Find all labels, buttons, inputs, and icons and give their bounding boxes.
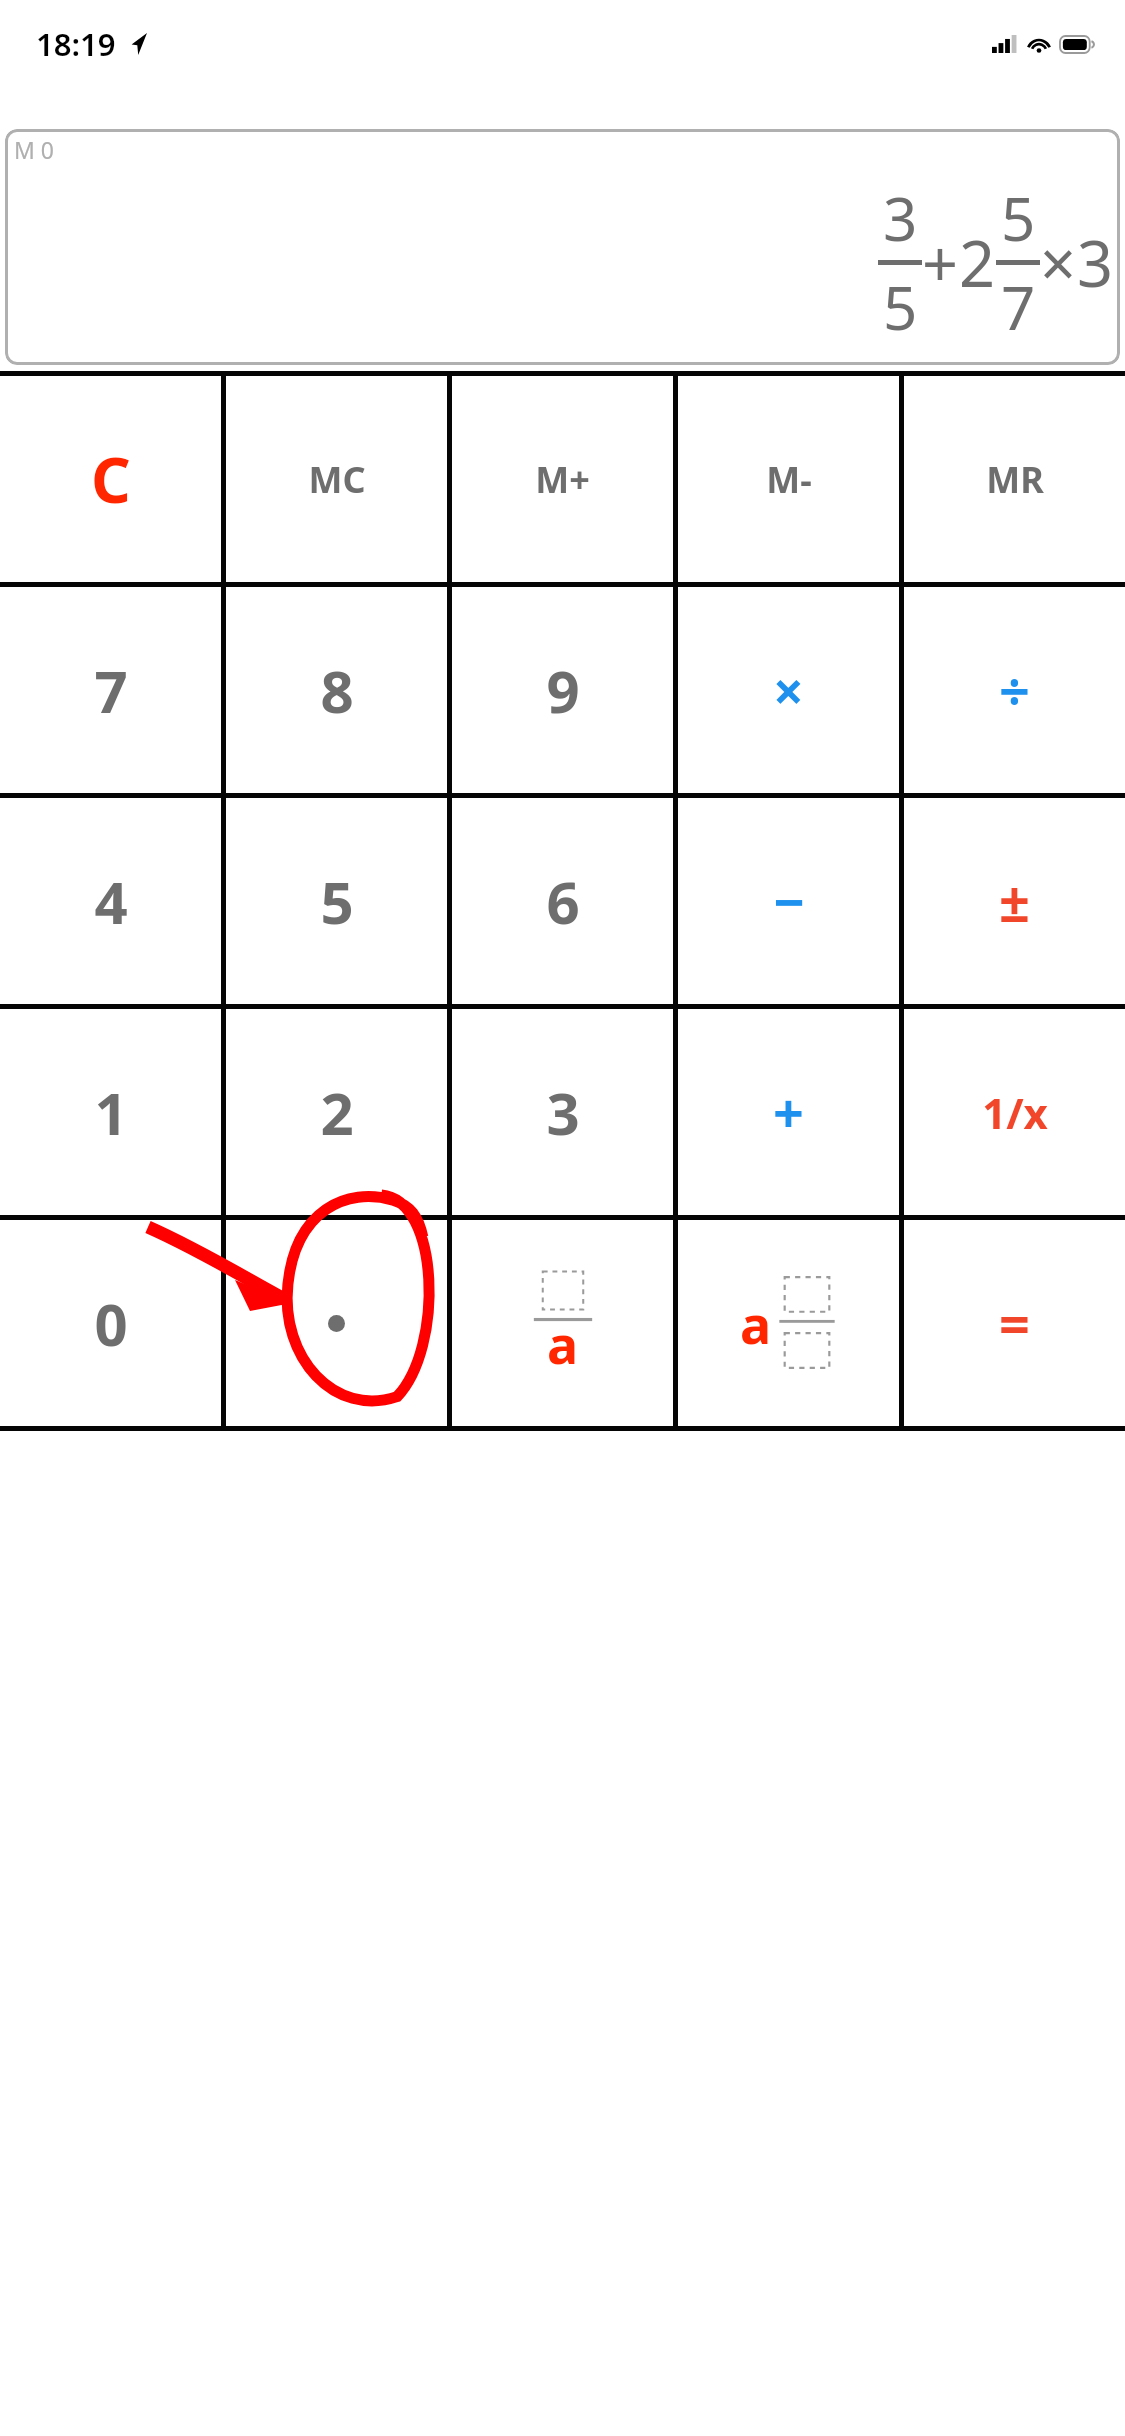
staticText: M+ [535,455,590,504]
button[interactable]: 1/x [904,1009,1125,1215]
staticText: = [999,1286,1030,1360]
button[interactable]: 0 [0,1220,221,1426]
button[interactable]: Fraction [452,1220,673,1426]
staticText: + [773,1075,804,1149]
button[interactable]: 5 [226,798,447,1004]
staticText: + [922,220,959,306]
staticText: 0 [94,1284,128,1363]
staticText: 6 [546,862,580,941]
staticText: 5 [320,862,354,941]
staticText: 8 [320,651,354,730]
button[interactable]: − [678,798,899,1004]
staticText: 4 [94,862,128,941]
staticText: 1 [94,1073,128,1152]
button[interactable]: 4 [0,798,221,1004]
button[interactable]: C [0,376,221,582]
button[interactable]: = [904,1220,1125,1426]
staticText: C [91,437,131,521]
staticText: 18:19 [36,23,116,65]
staticText: 3 [1077,220,1114,306]
button[interactable]: 2 [226,1009,447,1215]
button[interactable]: Mixed fraction [678,1220,899,1426]
button[interactable]: 7 [0,587,221,793]
staticText: ± [999,864,1030,938]
button[interactable]: ÷ [904,587,1125,793]
button[interactable]: M+ [452,376,673,582]
staticText: × [773,653,804,727]
button[interactable]: + [678,1009,899,1215]
staticText: MC [308,455,366,504]
button[interactable]: 3 [452,1009,673,1215]
staticText: 7 [1001,266,1036,348]
staticText: a [547,1308,579,1379]
staticText: a [740,1288,772,1359]
button[interactable]: 6 [452,798,673,1004]
staticText: × [1040,220,1077,306]
staticText: 2 [320,1073,354,1152]
staticText: 3 [883,177,918,259]
staticText: 5 [883,266,918,348]
staticText: M- [766,455,812,504]
staticText: 7 [94,651,128,730]
button[interactable]: 1 [0,1009,221,1215]
button[interactable]: ± [904,798,1125,1004]
staticText: 5 [1001,177,1036,259]
staticText: 2 [959,220,996,306]
staticText: − [773,864,805,938]
staticText: 3 [546,1073,580,1152]
button[interactable]: × [678,587,899,793]
staticText: MR [986,455,1044,504]
button[interactable] [226,1220,447,1426]
button[interactable]: 8 [226,587,447,793]
button[interactable]: MC [226,376,447,582]
button[interactable]: MR [904,376,1125,582]
staticText: ÷ [999,653,1030,727]
button[interactable]: 9 [452,587,673,793]
staticText: 1/x [982,1084,1048,1141]
button[interactable]: M- [678,376,899,582]
button[interactable]: M 0 [5,129,1120,365]
staticText: 9 [546,651,580,730]
staticText: M 0 [14,134,54,165]
